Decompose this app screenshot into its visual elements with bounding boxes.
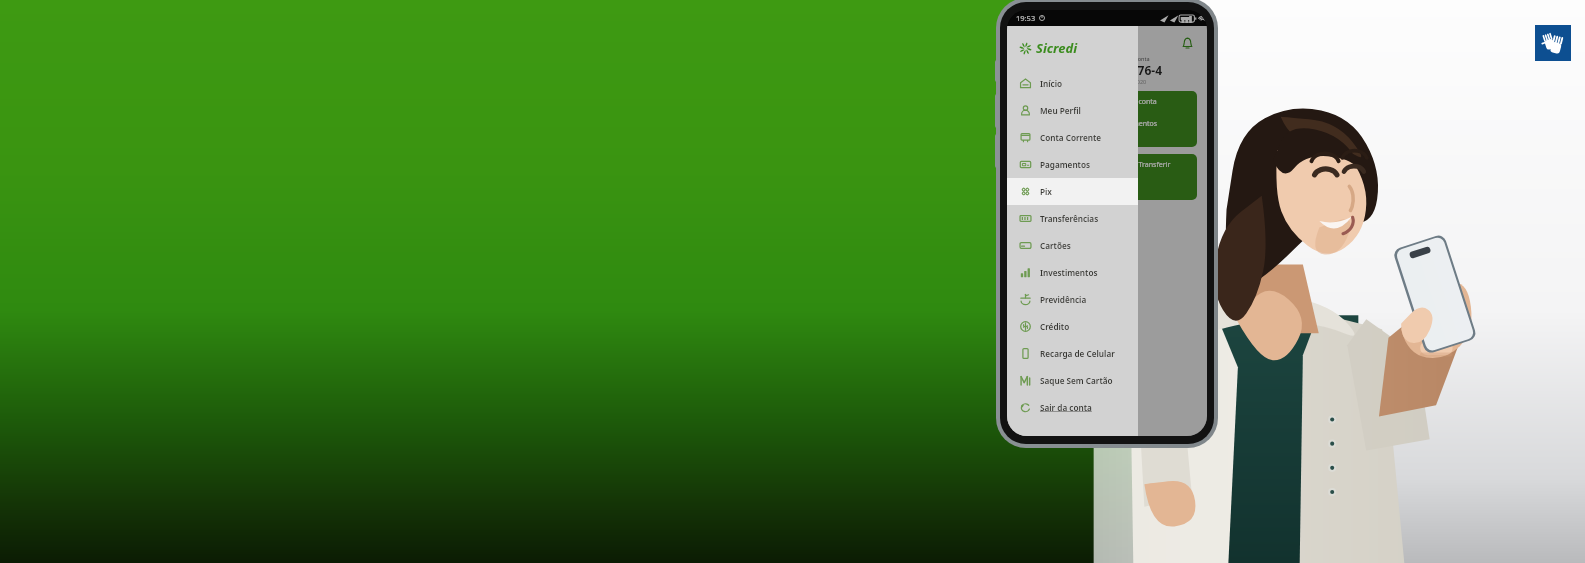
staticText: Recarga de Celular (1040, 348, 1115, 359)
staticText: Meu Perfil (1040, 105, 1081, 116)
staticText: 06/06/2020 (1117, 78, 1147, 85)
staticText: Investimentos (1040, 267, 1098, 278)
staticText: ativa / Conta (1117, 55, 1150, 62)
button[interactable]: Transferências (1007, 205, 1138, 232)
staticText: 19:53 (1016, 13, 1036, 23)
button[interactable]: Crédito (1007, 313, 1138, 340)
button[interactable]: Cartões (1007, 232, 1138, 259)
button[interactable]: Recarga de Celular (1007, 340, 1138, 367)
button[interactable]: Início (1007, 70, 1138, 97)
staticText: Cartões (1040, 240, 1071, 251)
button[interactable]: Sair da conta (1007, 394, 1138, 421)
staticText: Lançamentos (1113, 119, 1158, 129)
staticText: Início (1040, 78, 1063, 89)
button[interactable]: Pix (1007, 178, 1138, 205)
staticText: Previdência (1040, 294, 1087, 305)
staticText: Saque Sem Cartão (1040, 375, 1113, 386)
button[interactable]: Conta Corrente (1007, 124, 1138, 151)
staticText: Pagamentos (1040, 159, 1091, 170)
button[interactable]: Pagamentos (1007, 151, 1138, 178)
staticText: 17476-4 (1117, 62, 1163, 78)
staticText: Extrato conta (1113, 97, 1157, 107)
button[interactable]: Acessibilidade em Libras (1535, 25, 1571, 61)
staticText: Sair da conta (1040, 402, 1092, 413)
staticText: Conta Corrente (1040, 132, 1102, 143)
button[interactable]: Notificações (1180, 36, 1195, 51)
button[interactable]: Saque Sem Cartão (1007, 367, 1138, 394)
staticText: Pix (1040, 186, 1052, 197)
staticText: Transferências (1040, 213, 1099, 224)
button[interactable]: Investimentos (1007, 259, 1138, 286)
button[interactable]: Meu Perfil (1007, 97, 1138, 124)
staticText: Pagar / Transferir (1113, 160, 1171, 170)
button[interactable]: Previdência (1007, 286, 1138, 313)
button[interactable]: Extrato conta (1107, 91, 1197, 147)
staticText: Crédito (1040, 321, 1070, 332)
button[interactable]: Pagar / Transferir (1107, 154, 1197, 200)
staticText: Sicredi (1036, 39, 1078, 57)
